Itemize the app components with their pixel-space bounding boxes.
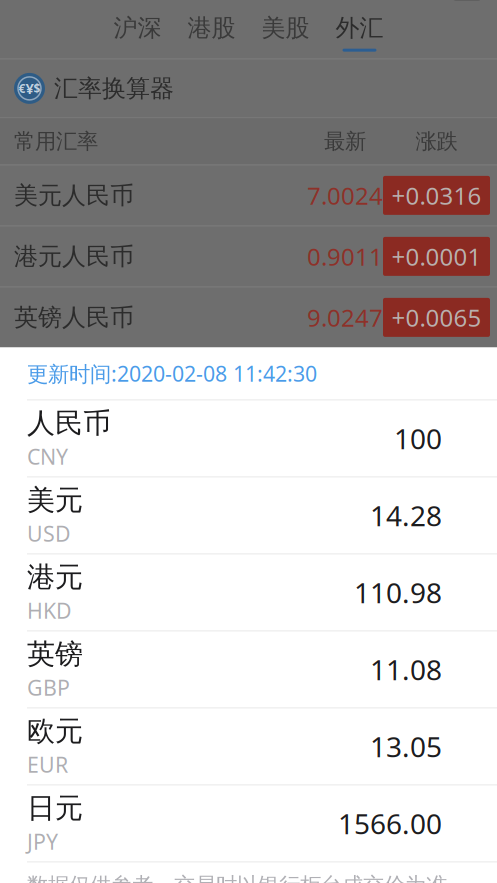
button[interactable]: 英镑	[0, 631, 497, 707]
staticText: 沪深	[113, 13, 161, 43]
button[interactable]: 美股	[254, 8, 316, 56]
button[interactable]: 欧元	[0, 708, 497, 784]
button[interactable]: 港元人民币	[0, 226, 497, 286]
staticText: 英镑人民币	[14, 303, 134, 332]
staticText: 14.28	[370, 497, 442, 534]
staticText: CNY	[27, 442, 68, 471]
button[interactable]: 美元人民币	[0, 165, 497, 225]
staticText: €	[18, 80, 25, 96]
staticText: 美元人民币	[14, 181, 134, 210]
staticText: +0.0065	[391, 301, 481, 333]
button[interactable]: 沪深	[106, 8, 168, 56]
staticText: 0.9011	[307, 240, 383, 272]
staticText: JPY	[27, 827, 58, 856]
staticText: 港元人民币	[14, 242, 134, 271]
staticText: ¥	[25, 79, 33, 98]
staticText: 100	[394, 420, 442, 457]
staticText: 110.98	[354, 574, 442, 611]
staticText: +0.0001	[391, 240, 481, 272]
staticText: +0.0316	[391, 179, 481, 211]
staticText: 人民币	[27, 406, 111, 440]
staticText: 欧元	[27, 714, 83, 748]
staticText: GBP	[27, 673, 70, 702]
staticText: 港元	[27, 560, 83, 594]
button[interactable]: 港股	[180, 8, 242, 56]
staticText: 最新	[324, 128, 366, 154]
button[interactable]: €	[0, 59, 497, 117]
staticText: 数据仅供参考，交易时以银行柜台成交价为准	[27, 872, 447, 883]
button[interactable]: 美元	[0, 477, 497, 553]
staticText: 13.05	[370, 728, 442, 765]
staticText: 日元	[27, 791, 83, 825]
staticText: USD	[27, 519, 71, 548]
staticText: 英镑	[27, 637, 83, 671]
staticText: HKD	[27, 596, 72, 625]
staticText: $	[33, 80, 40, 96]
staticText: 9.0247	[307, 301, 383, 333]
staticText: 外汇	[335, 13, 383, 43]
staticText: 汇率换算器	[54, 74, 174, 103]
button[interactable]: 英镑人民币	[0, 287, 497, 347]
button[interactable]: 人民币	[0, 400, 497, 476]
staticText: 美元	[27, 483, 83, 517]
button[interactable]: 港元	[0, 554, 497, 630]
staticText: EUR	[27, 750, 68, 779]
staticText: 11.08	[370, 651, 442, 688]
staticText: 7.0024	[307, 179, 383, 211]
button[interactable]: 外汇	[328, 8, 390, 56]
staticText: 1566.00	[338, 805, 442, 842]
staticText: 涨跌	[415, 128, 457, 154]
button[interactable]: 日元	[0, 785, 497, 861]
staticText: 港股	[187, 13, 235, 43]
staticText: 常用汇率	[14, 128, 98, 154]
staticText: 更新时间:2020-02-08 11:42:30	[27, 359, 317, 387]
staticText: 美股	[261, 13, 309, 43]
